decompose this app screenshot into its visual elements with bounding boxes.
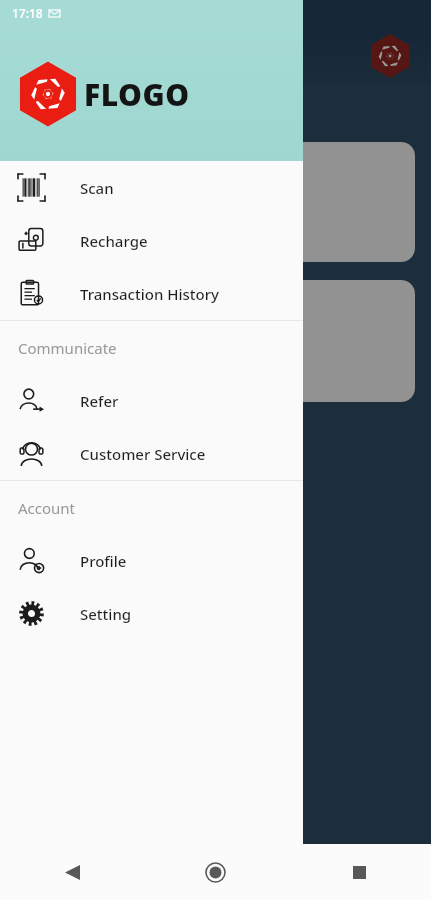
staticText: Customer Service bbox=[80, 444, 206, 464]
staticText: Recharge bbox=[80, 231, 148, 251]
button[interactable]: Profile bbox=[0, 534, 303, 587]
button[interactable]: Recent apps bbox=[337, 850, 381, 894]
button[interactable]: Customer Service bbox=[0, 427, 303, 480]
staticText: Setting bbox=[80, 604, 132, 624]
staticText: Transaction History bbox=[80, 284, 219, 304]
button[interactable]: Home bbox=[193, 850, 237, 894]
staticText: Unclaimed bbox=[34, 192, 110, 212]
button[interactable]: Refer bbox=[0, 374, 303, 427]
staticText: Account bbox=[18, 498, 76, 518]
staticText: FLOGO bbox=[84, 74, 190, 115]
staticText: Profile bbox=[80, 551, 127, 571]
button[interactable]: Transaction History bbox=[0, 267, 303, 320]
staticText: Communicate bbox=[18, 338, 117, 358]
button[interactable]: Scan bbox=[0, 161, 303, 214]
button[interactable]: Recharge bbox=[0, 214, 303, 267]
staticText: 17:18 bbox=[12, 5, 43, 21]
staticText: Scan bbox=[80, 178, 114, 198]
staticText: App Version bbox=[34, 320, 119, 340]
button[interactable]: Setting bbox=[0, 587, 303, 640]
staticText: Wallet Balance ( 0 ) bbox=[22, 108, 155, 128]
staticText: Refer bbox=[80, 391, 119, 411]
button[interactable]: Back bbox=[50, 850, 94, 894]
staticText: 1.0 bbox=[34, 340, 59, 363]
